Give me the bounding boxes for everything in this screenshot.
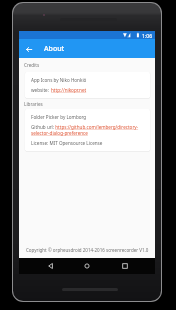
- staticText: About: [44, 44, 65, 54]
- button[interactable]: Github url: https://github.com/lemberg/d…: [31, 124, 146, 136]
- staticText: website:: [31, 87, 51, 93]
- staticText: Credits: [24, 62, 40, 68]
- staticText: App Icons by Niko Honkiö: [31, 77, 87, 83]
- button[interactable]: Recent apps: [115, 258, 135, 274]
- staticText: Libraries: [24, 101, 43, 107]
- button[interactable]: Back: [40, 258, 60, 274]
- staticText: 1:06: [142, 32, 153, 39]
- staticText: License: MIT Opensource License: [31, 140, 103, 146]
- button[interactable]: http://nikopr.net: [51, 87, 87, 93]
- button[interactable]: Navigate up: [21, 40, 37, 58]
- staticText: Copyright © orpheusdroid 2014-2016 scree…: [26, 247, 149, 253]
- button[interactable]: Home: [77, 258, 97, 274]
- staticText: Folder Picker by Lomborg: [31, 114, 87, 120]
